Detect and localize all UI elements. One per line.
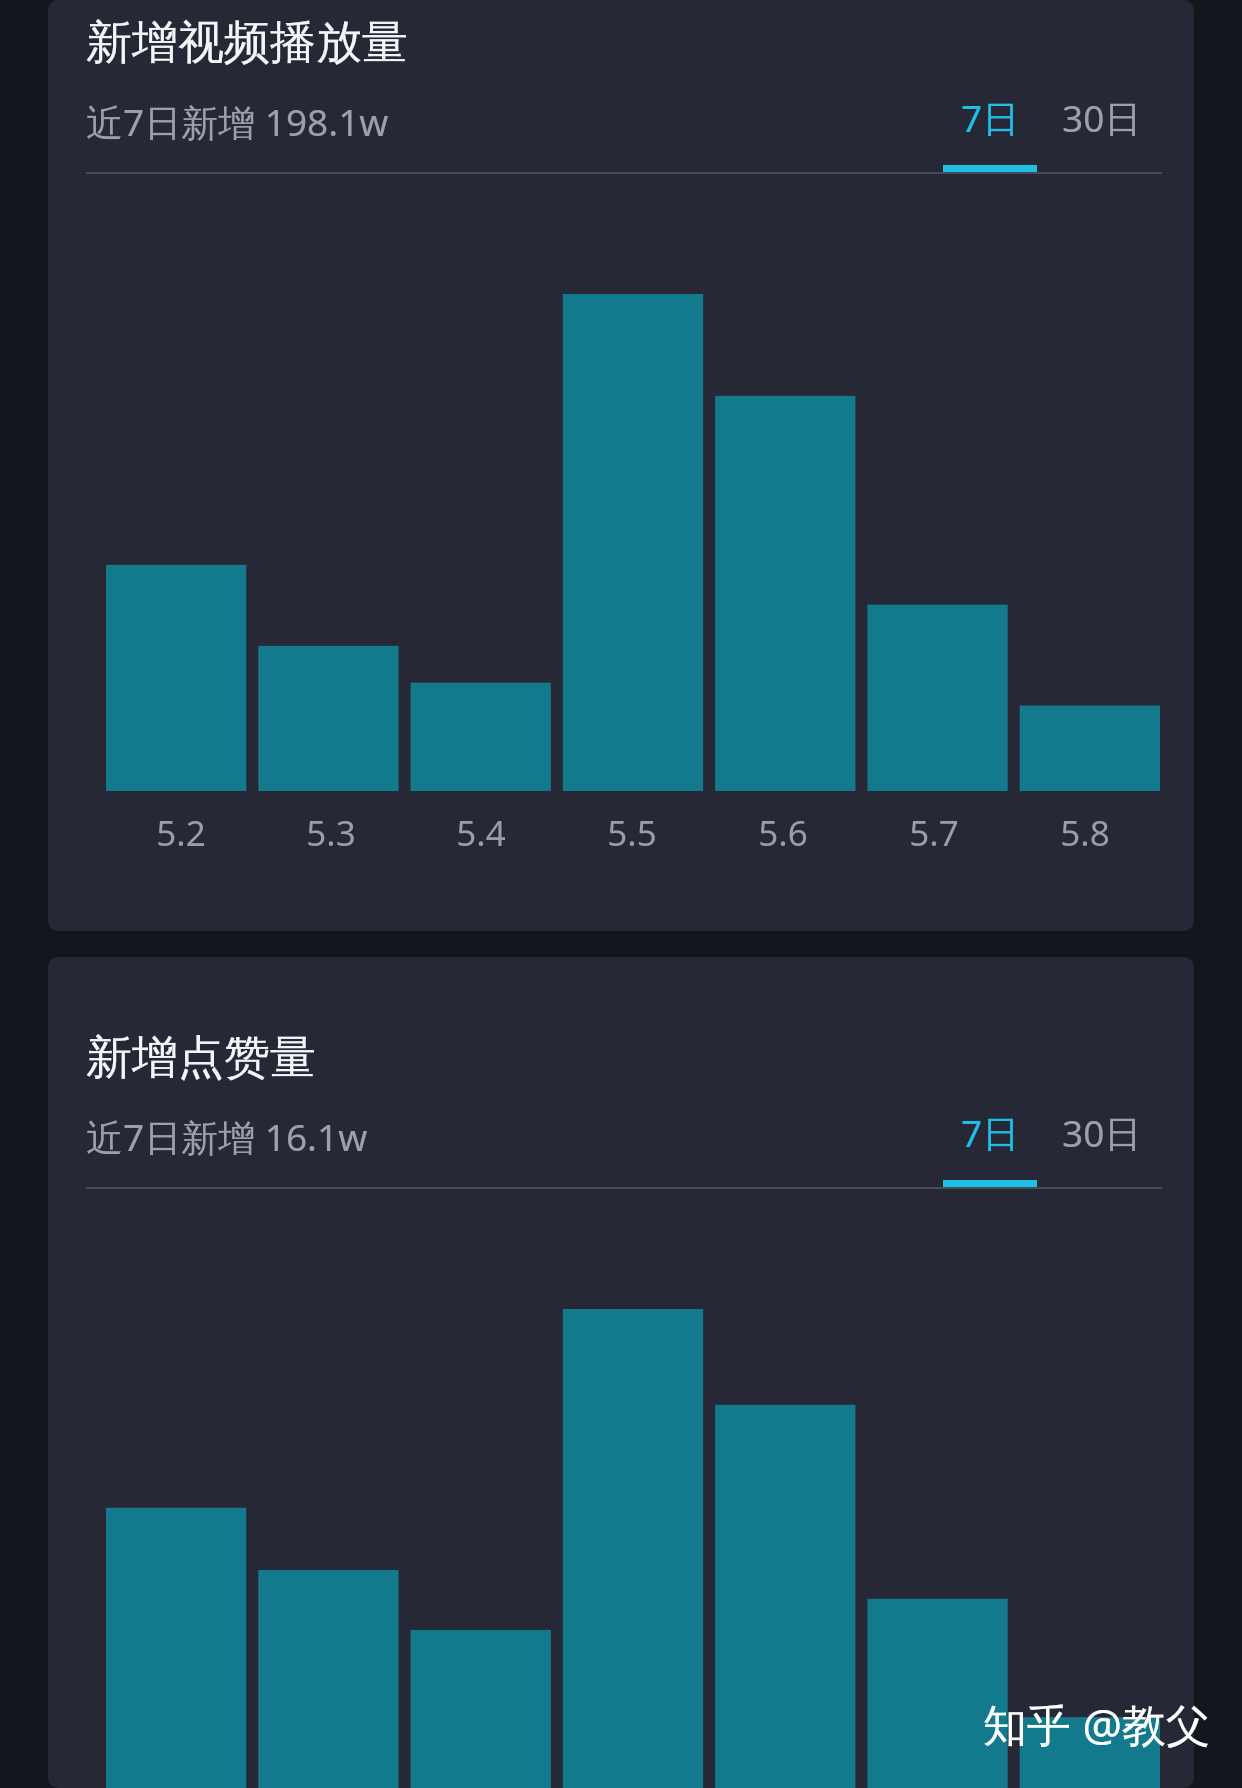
staticText: 5.8 <box>1060 809 1110 857</box>
staticText: 5.6 <box>758 809 808 857</box>
staticText: 近7日新增 198.1w <box>86 96 389 147</box>
button[interactable]: 7日 <box>938 92 1042 172</box>
staticText: 5.3 <box>306 809 356 857</box>
staticText: 近7日新增 16.1w <box>86 1111 368 1162</box>
staticText: 30日 <box>1062 1107 1142 1158</box>
button[interactable]: 30日 <box>1042 1107 1162 1187</box>
button[interactable]: 30日 <box>1042 92 1162 172</box>
button[interactable]: 新增点赞量 <box>48 957 1194 1788</box>
staticText: 新增点赞量 <box>86 1029 316 1087</box>
button[interactable]: 新增视频播放量 <box>48 0 1194 931</box>
staticText: 知乎 @教父 <box>983 1694 1210 1754</box>
staticText: 5.4 <box>456 809 506 857</box>
staticText: 7日 <box>961 1107 1020 1158</box>
button[interactable]: 7日 <box>938 1107 1042 1187</box>
staticText: 新增视频播放量 <box>86 14 408 72</box>
staticText: 30日 <box>1062 92 1142 143</box>
staticText: 7日 <box>961 92 1020 143</box>
staticText: 5.2 <box>156 809 206 857</box>
staticText: 5.5 <box>607 809 657 857</box>
staticText: 5.7 <box>909 809 959 857</box>
